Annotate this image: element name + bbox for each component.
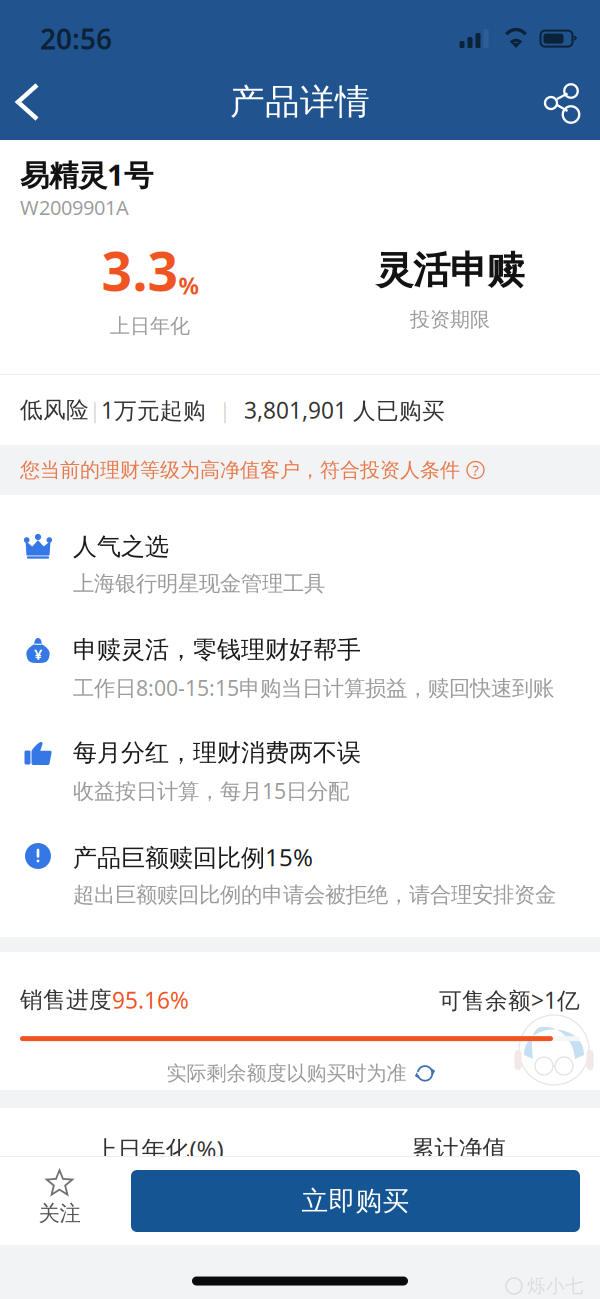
staticText: | xyxy=(89,396,101,424)
staticText: 3,801,901 人已购买 xyxy=(244,395,445,425)
staticText: 立即购买 xyxy=(301,1185,409,1217)
staticText: 1万元起购 xyxy=(101,395,206,425)
staticText: 关注 xyxy=(38,1200,80,1227)
staticText: 3.3 xyxy=(101,235,178,306)
staticText: 实际剩余额度以购买时为准 xyxy=(166,1061,406,1086)
staticText: W2009901A xyxy=(20,194,129,221)
staticText: 95.16% xyxy=(112,985,189,1015)
button[interactable]: 关注 xyxy=(0,1157,131,1245)
staticText: 人气之选 xyxy=(73,532,169,561)
staticText: 投资期限 xyxy=(410,307,490,332)
staticText: 销售进度 xyxy=(20,986,112,1014)
staticText: 您当前的理财等级为高净值客户，符合投资人条件 xyxy=(20,458,460,482)
staticText: 易精灵1号 xyxy=(20,155,153,194)
staticText: 产品详情 xyxy=(230,81,370,123)
staticText: 上日年化 xyxy=(110,314,190,338)
button[interactable]: Back xyxy=(4,71,51,133)
staticText: ¥ xyxy=(34,644,42,664)
staticText: 可售余额>1亿 xyxy=(439,985,580,1015)
staticText: 上日年化(%) xyxy=(93,1133,223,1165)
staticText: ? xyxy=(472,460,478,480)
staticText: 申赎灵活，零钱理财好帮手 xyxy=(73,635,361,664)
staticText: 上海银行明星现金管理工具 xyxy=(73,570,325,597)
staticText: 每月分红，理财消费两不误 xyxy=(73,738,361,767)
staticText: 低风险 xyxy=(20,396,89,424)
staticText: 收益按日计算，每月15日分配 xyxy=(73,776,349,805)
button[interactable]: 立即购买 xyxy=(131,1170,580,1232)
staticText: 工作日8:00-15:15申购当日计算损益，赎回快速到账 xyxy=(73,673,554,702)
staticText: % xyxy=(178,271,198,301)
staticText: 产品巨额赎回比例15% xyxy=(73,841,313,873)
button[interactable]: Share xyxy=(540,79,586,125)
staticText: 灵活申赎 xyxy=(376,247,524,293)
staticText: 累计净值 xyxy=(410,1134,506,1164)
staticText: 超出巨额赎回比例的申请会被拒绝，请合理安排资金 xyxy=(73,882,556,908)
staticText: 20:56 xyxy=(40,20,112,57)
staticText: | xyxy=(219,396,231,424)
staticText: 烁小七 xyxy=(527,1274,584,1297)
